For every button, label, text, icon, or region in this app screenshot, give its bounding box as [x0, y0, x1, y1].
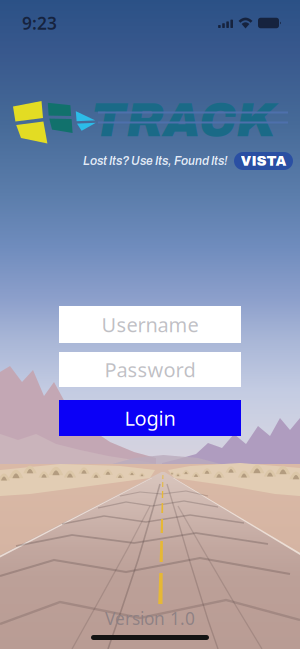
staticText: Login [124, 404, 175, 432]
button[interactable]: Username [59, 306, 241, 343]
button[interactable]: Password [59, 352, 241, 387]
staticText: Version 1.0 [105, 606, 195, 630]
staticText: Password [104, 356, 195, 383]
staticText: TRACK [91, 94, 276, 146]
staticText: 9:23 [22, 11, 57, 34]
staticText: Username [101, 311, 198, 338]
button[interactable]: Login [59, 400, 241, 436]
staticText: Lost Its? Use Its, Found Its! [83, 154, 228, 168]
staticText: VISTA [240, 153, 286, 169]
